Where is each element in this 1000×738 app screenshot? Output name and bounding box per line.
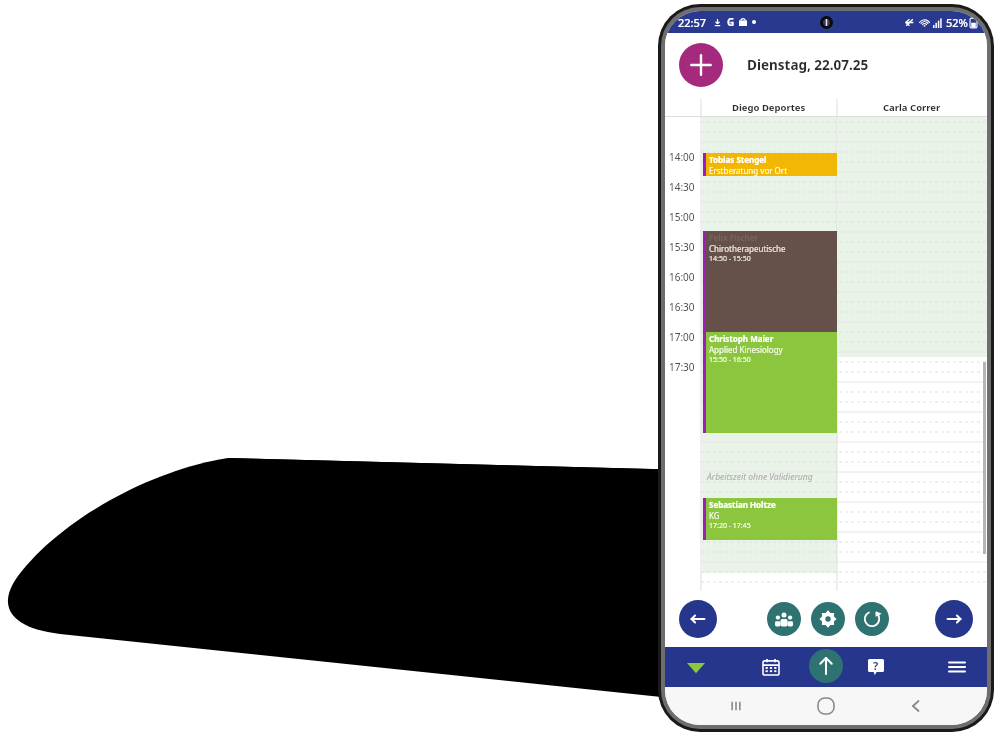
button[interactable]: Felix Fischer bbox=[703, 231, 837, 332]
staticText: Christoph Maier bbox=[709, 333, 774, 344]
staticText: KG bbox=[709, 510, 720, 521]
staticText: 15:30 bbox=[669, 240, 695, 254]
button[interactable]: Neuer Termin bbox=[679, 43, 723, 87]
button[interactable]: Nach oben bbox=[809, 649, 843, 683]
staticText: Sebastian Holtze bbox=[709, 499, 776, 510]
button[interactable]: Letzte Apps bbox=[725, 695, 747, 717]
staticText: 15:00 bbox=[669, 210, 695, 224]
staticText: Felix Fischer bbox=[709, 232, 759, 243]
staticText: Dienstag, 22.07.25 bbox=[747, 56, 869, 74]
staticText: ? bbox=[873, 658, 879, 673]
staticText: 22:57 bbox=[678, 15, 707, 30]
staticText: Diego Deportes bbox=[732, 101, 806, 114]
button[interactable]: Menü bbox=[945, 655, 969, 679]
staticText: 14:30 bbox=[669, 180, 695, 194]
button[interactable]: Home bbox=[814, 694, 838, 718]
staticText: 17:00 bbox=[669, 330, 695, 344]
staticText: 17:30 bbox=[669, 360, 695, 374]
staticText: 17:20 - 17:45 bbox=[709, 521, 751, 531]
button[interactable]: Gruppe bbox=[767, 602, 801, 636]
staticText: Arbeitszeit ohne Validierung bbox=[707, 471, 813, 483]
button[interactable]: Einstellungen bbox=[811, 602, 845, 636]
button[interactable]: Christoph Maier bbox=[703, 332, 837, 433]
staticText: 16:00 bbox=[669, 270, 695, 284]
staticText: 16:30 bbox=[669, 300, 695, 314]
staticText: 15:50 - 16:50 bbox=[709, 355, 751, 365]
staticText: Tobias Stengel bbox=[709, 154, 767, 165]
staticText: 52% bbox=[946, 15, 968, 30]
staticText: Carla Correr bbox=[883, 101, 941, 114]
button[interactable]: Hilfe bbox=[864, 655, 888, 679]
button[interactable]: Weiter bbox=[935, 600, 973, 638]
button[interactable]: Tobias Stengel bbox=[703, 153, 837, 176]
staticText: Chirotherapeutische Erstbehandlung bbox=[709, 243, 835, 254]
staticText: 14:00 bbox=[669, 150, 695, 164]
button[interactable]: Aktualisieren bbox=[855, 602, 889, 636]
staticText: Erstberatung vor Ort bbox=[709, 165, 788, 176]
button[interactable]: Zurück bbox=[679, 600, 717, 638]
staticText: 14:50 - 15:50 bbox=[709, 254, 751, 264]
staticText: Applied Kinesiology bbox=[709, 344, 783, 355]
button[interactable]: Start bbox=[683, 654, 709, 680]
staticText: G bbox=[727, 15, 735, 29]
button[interactable]: Zurück bbox=[905, 695, 927, 717]
button[interactable]: Kalender bbox=[758, 654, 784, 680]
button[interactable]: Sebastian Holtze bbox=[703, 498, 837, 540]
